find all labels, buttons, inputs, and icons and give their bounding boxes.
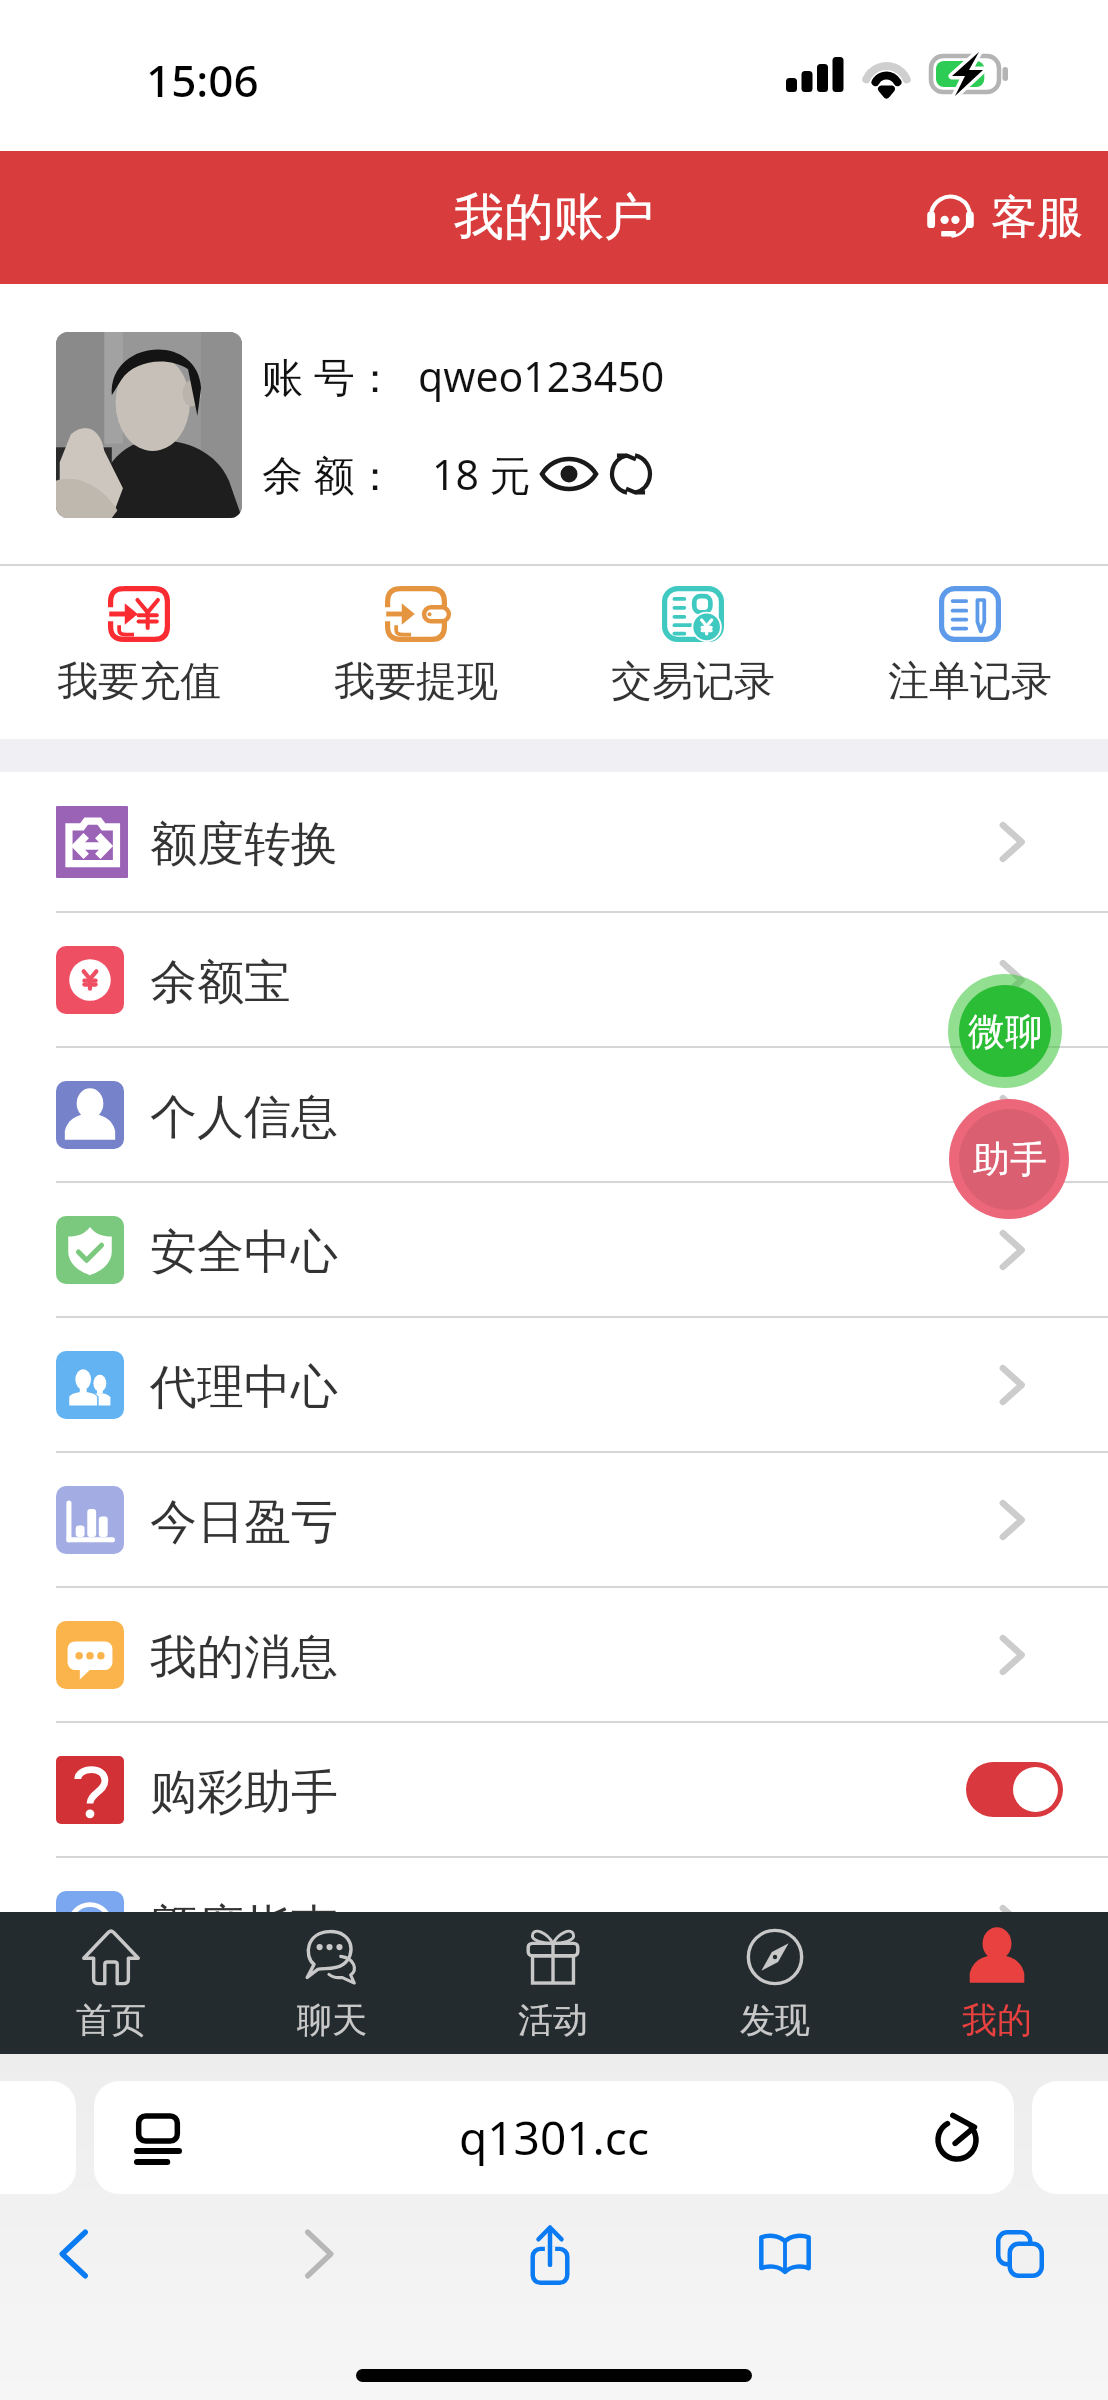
button[interactable]: Show balance xyxy=(541,446,597,502)
button[interactable]: Page settings xyxy=(114,2094,202,2182)
staticText: 聊天 xyxy=(297,1998,367,2042)
button[interactable]: 额度转换 xyxy=(0,772,1108,911)
staticText: q1301.cc xyxy=(459,2106,650,2169)
staticText: 我的 xyxy=(962,1998,1032,2042)
staticText: 注单记录 xyxy=(888,656,1052,708)
staticText: 购彩助手 xyxy=(150,1763,338,1822)
button[interactable]: 我的 xyxy=(886,1912,1108,2054)
staticText: 代理中心 xyxy=(150,1358,338,1417)
button[interactable]: Back xyxy=(27,2206,123,2302)
button[interactable]: 余额宝 xyxy=(0,913,1108,1046)
staticText: qweo123450 xyxy=(418,348,665,404)
staticText: 活动 xyxy=(518,1998,588,2042)
button[interactable]: 交易记录 xyxy=(554,566,831,739)
button[interactable]: Reload xyxy=(915,2096,999,2180)
button[interactable]: 发现 xyxy=(664,1912,886,2054)
button[interactable]: 客服 xyxy=(912,151,1108,284)
button[interactable]: 微聊 xyxy=(948,974,1062,1088)
staticText: 发现 xyxy=(740,1998,810,2042)
button[interactable]: 额度指南 xyxy=(0,1858,1108,1991)
button[interactable]: 首页 xyxy=(0,1912,221,2054)
button[interactable]: 我的消息 xyxy=(0,1588,1108,1721)
button[interactable]: Share xyxy=(502,2206,598,2302)
button[interactable]: 聊天 xyxy=(221,1912,442,2054)
staticText: 额度转换 xyxy=(150,815,338,874)
staticText: 余额宝 xyxy=(150,953,291,1012)
button[interactable]: 今日盈亏 xyxy=(0,1453,1108,1586)
staticText: 安全中心 xyxy=(150,1223,338,1282)
button[interactable]: 购彩助手 xyxy=(0,1723,1108,1856)
button[interactable]: 安全中心 xyxy=(0,1183,1108,1316)
button[interactable]: Bookmarks xyxy=(737,2206,833,2302)
button[interactable]: Forward xyxy=(270,2206,366,2302)
button[interactable]: Page settings xyxy=(94,2081,1014,2194)
staticText: 15:06 xyxy=(146,50,259,110)
button[interactable]: Tabs xyxy=(972,2206,1068,2302)
button[interactable]: 代理中心 xyxy=(0,1318,1108,1451)
staticText: 微聊 xyxy=(968,1008,1042,1055)
staticText: 我要提现 xyxy=(334,656,498,708)
staticText: 我的账户 xyxy=(454,186,654,249)
staticText: 额度指南 xyxy=(150,1898,338,1957)
button[interactable]: 个人信息 xyxy=(0,1048,1108,1181)
staticText: 账 号： xyxy=(262,348,396,404)
staticText: 18 元 xyxy=(432,446,531,502)
staticText: 客服 xyxy=(991,189,1083,247)
button[interactable]: Refresh balance xyxy=(605,448,657,500)
staticText: 助手 xyxy=(973,1136,1047,1183)
staticText: 首页 xyxy=(76,1998,146,2042)
button[interactable]: 注单记录 xyxy=(831,566,1108,739)
staticText: 我的消息 xyxy=(150,1628,338,1687)
staticText: 个人信息 xyxy=(150,1088,338,1147)
button[interactable]: 活动 xyxy=(442,1912,664,2054)
button[interactable]: 我要充值 xyxy=(0,566,277,739)
button[interactable]: 我要提现 xyxy=(277,566,554,739)
staticText: 余 额： xyxy=(262,446,396,502)
button[interactable]: Toggle xyxy=(966,1762,1063,1817)
staticText: 今日盈亏 xyxy=(150,1493,338,1552)
staticText: 我要充值 xyxy=(57,656,221,708)
button[interactable]: 助手 xyxy=(949,1099,1069,1219)
staticText: 交易记录 xyxy=(611,656,775,708)
